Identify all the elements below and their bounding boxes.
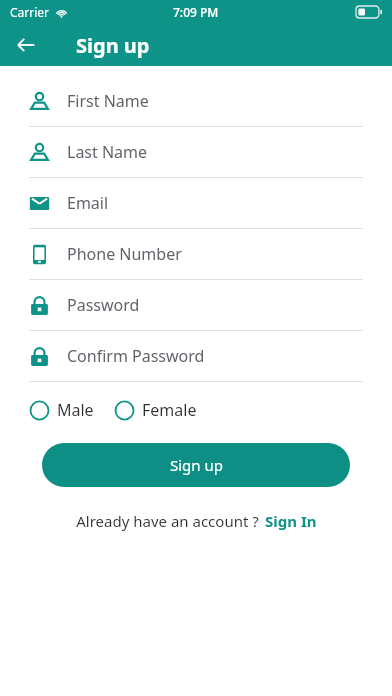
staticText: Sign up bbox=[170, 455, 223, 475]
button[interactable]: Sign In bbox=[265, 511, 317, 531]
button[interactable]: Password bbox=[0, 280, 392, 331]
staticText: Last Name bbox=[67, 141, 148, 163]
staticText: Email bbox=[67, 192, 109, 214]
button[interactable]: Email bbox=[0, 178, 392, 229]
button[interactable]: Phone Number bbox=[0, 229, 392, 280]
staticText: Female bbox=[142, 399, 197, 421]
button[interactable]: Male bbox=[29, 395, 94, 425]
button[interactable]: Last Name bbox=[0, 127, 392, 178]
staticText: Already have an account ? bbox=[76, 511, 259, 531]
button[interactable]: Female bbox=[114, 395, 197, 425]
staticText: 7:09 PM bbox=[173, 4, 219, 20]
staticText: Password bbox=[67, 294, 140, 316]
button[interactable]: Back bbox=[8, 27, 44, 63]
button[interactable]: Sign up bbox=[42, 443, 350, 487]
staticText: Phone Number bbox=[67, 243, 182, 265]
staticText: Confirm Password bbox=[67, 345, 205, 367]
button[interactable]: First Name bbox=[0, 76, 392, 127]
staticText: Sign up bbox=[76, 32, 150, 59]
button[interactable]: Confirm Password bbox=[0, 331, 392, 382]
staticText: Sign In bbox=[265, 511, 317, 531]
staticText: First Name bbox=[67, 90, 149, 112]
staticText: Male bbox=[57, 399, 94, 421]
staticText: Carrier bbox=[10, 4, 50, 20]
